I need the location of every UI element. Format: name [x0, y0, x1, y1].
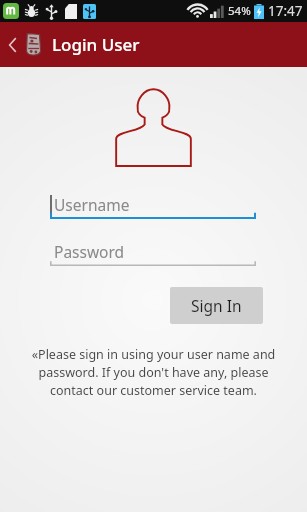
button[interactable]: Navigate up	[0, 32, 307, 57]
button[interactable]: Password	[50, 236, 256, 266]
staticText: «Please sign in using your user name and…	[17, 346, 290, 399]
staticText: 17:47	[268, 2, 303, 20]
staticText: Username	[54, 194, 130, 215]
button[interactable]: Sign In	[170, 287, 263, 324]
button[interactable]: Username	[50, 189, 256, 219]
staticText: Password	[54, 241, 125, 262]
staticText: Sign In	[191, 295, 242, 316]
staticText: 54%	[228, 3, 251, 19]
staticText: Login User	[52, 33, 140, 56]
